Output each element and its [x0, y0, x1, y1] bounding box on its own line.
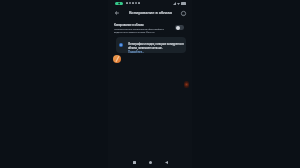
button[interactable]: Back: [161, 157, 171, 167]
button[interactable]: Home: [145, 157, 155, 167]
button[interactable]: Help: [179, 9, 187, 17]
button[interactable]: Копирование в облако: [108, 21, 192, 34]
button[interactable]: Back: [113, 9, 121, 17]
staticText: Фотографии и видео, которые копируются в…: [128, 42, 184, 50]
button[interactable]: Фотографии и видео, которые копируются в…: [116, 37, 186, 53]
staticText: Копирование в облако: [129, 10, 173, 15]
staticText: Копирование в облако: [114, 23, 144, 27]
staticText: Автоматическое копирование фотографий и …: [114, 28, 164, 34]
staticText: Подробнее…: [128, 50, 145, 53]
button[interactable]: Recents: [129, 157, 139, 167]
button[interactable]: Floating chat bubble: [113, 55, 121, 63]
